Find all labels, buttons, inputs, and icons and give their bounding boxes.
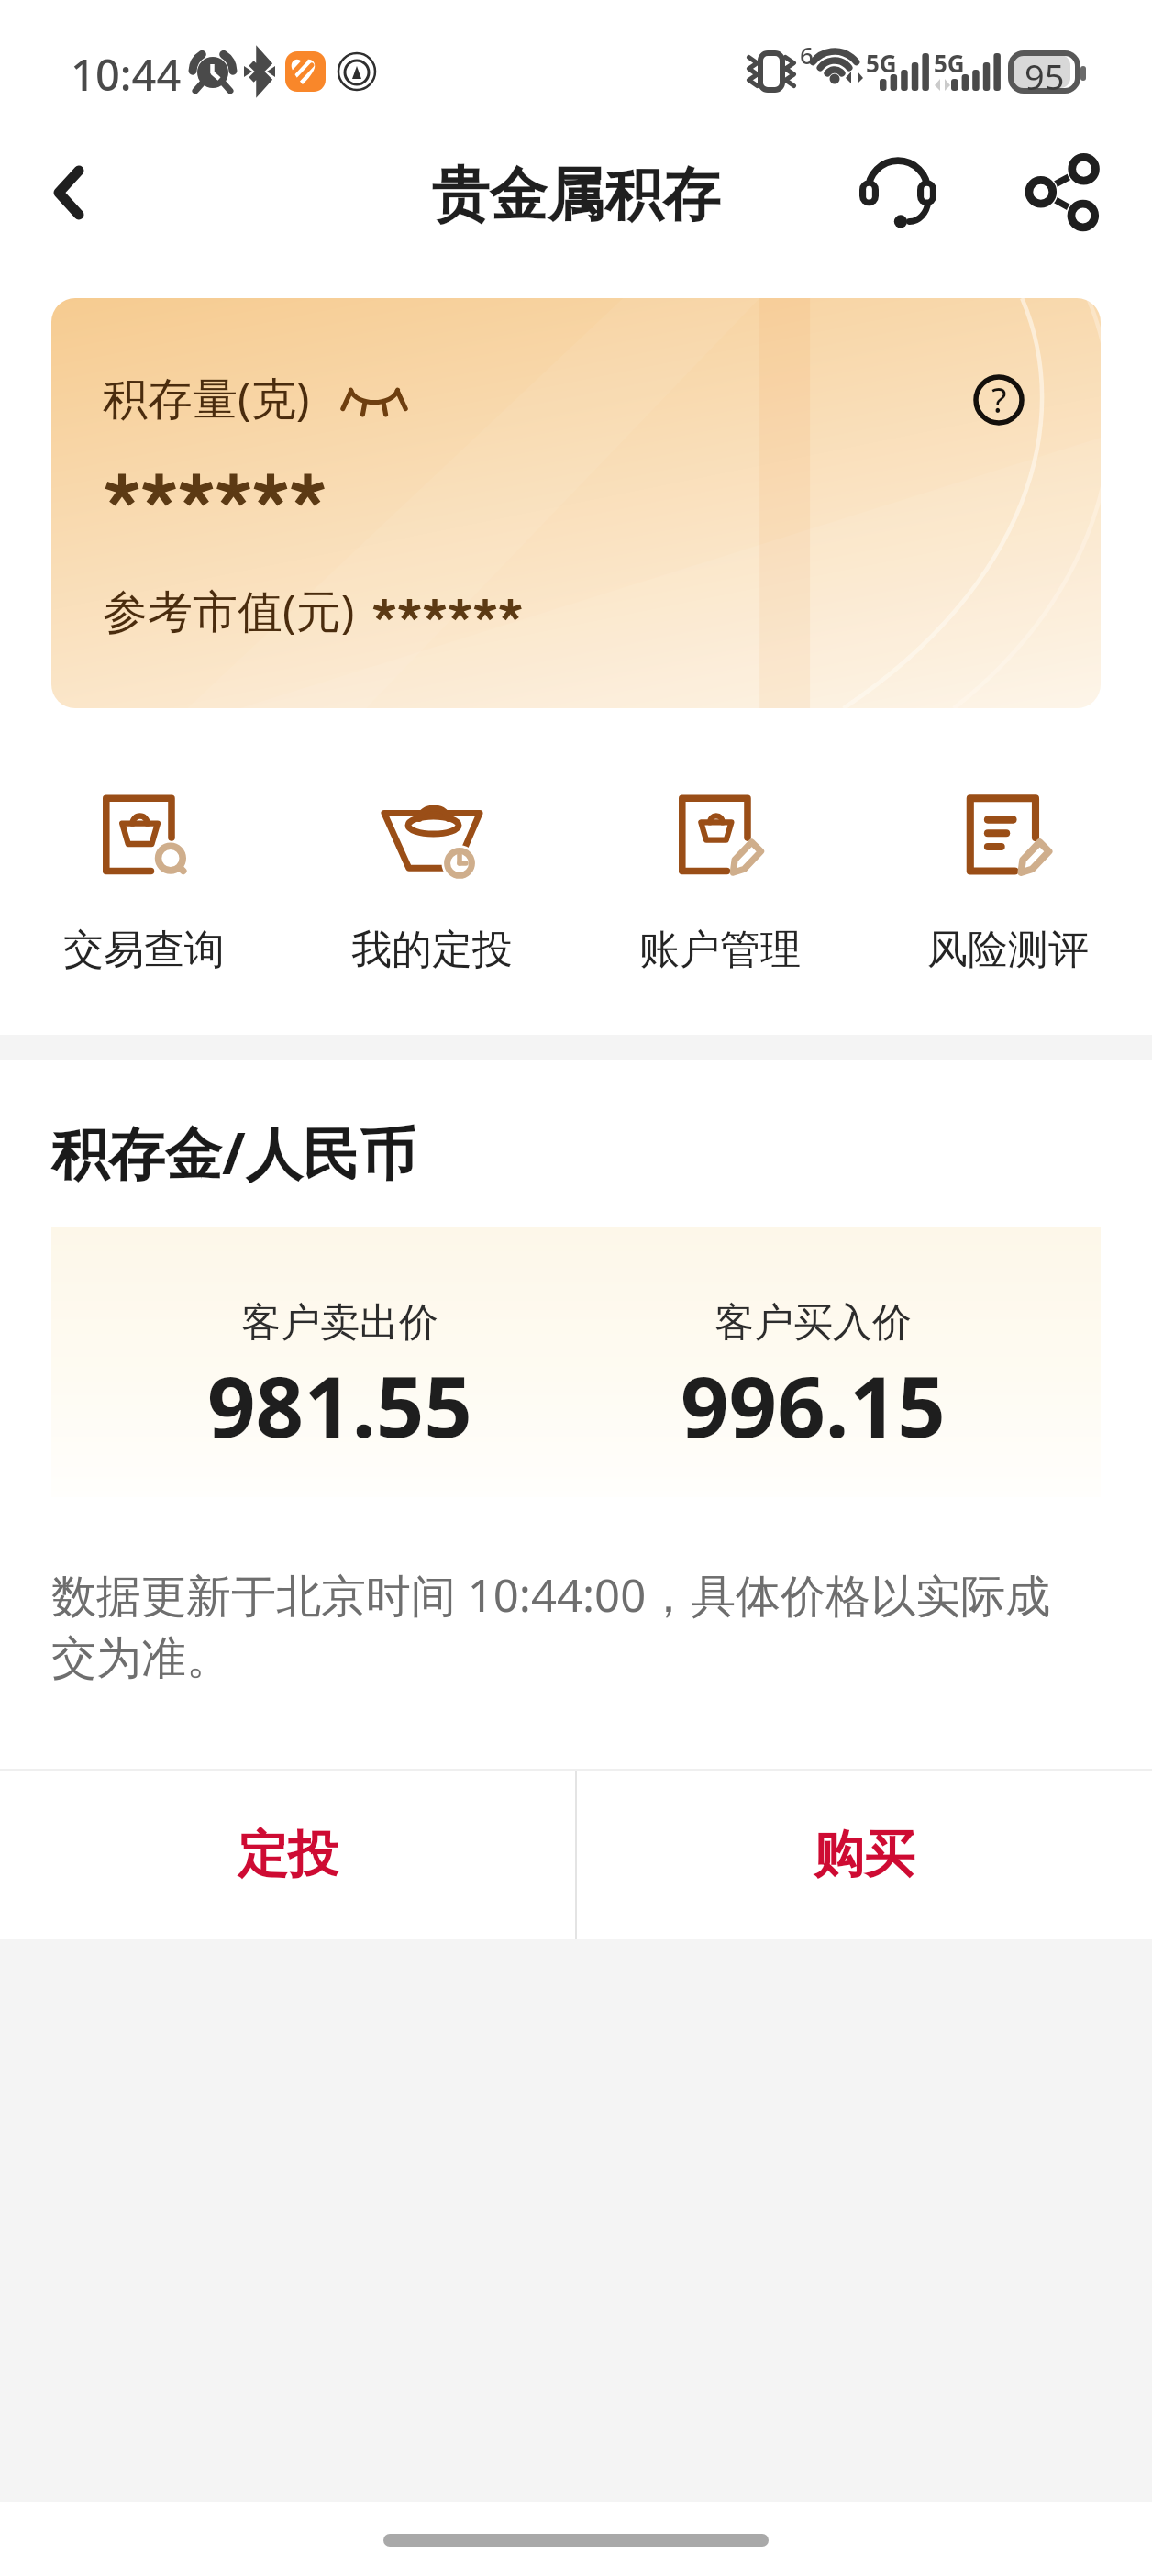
staticText: 客户买入价 <box>714 1298 912 1348</box>
staticText: 定投 <box>238 1823 338 1886</box>
staticText: 我的定投 <box>351 925 513 975</box>
staticText: 客户卖出价 <box>241 1298 438 1348</box>
staticText: 6 <box>800 39 814 71</box>
staticText: 购买 <box>814 1823 914 1886</box>
staticText: 参考市值(元) <box>103 580 355 641</box>
button[interactable]: 积存量(克) <box>51 298 1101 708</box>
staticText: 996.15 <box>681 1348 946 1462</box>
button[interactable]: Share <box>1013 142 1113 243</box>
button[interactable]: 风险测评 <box>864 794 1152 975</box>
button[interactable]: Customer service <box>847 142 948 243</box>
button[interactable]: 定投 <box>0 1769 576 1939</box>
button[interactable]: 我的定投 <box>288 794 576 975</box>
staticText: 数据更新于北京时间 10:44:00，具体价格以实际成交为准。 <box>51 1564 1088 1687</box>
button[interactable]: Back <box>20 142 117 243</box>
staticText: ? <box>991 375 1007 423</box>
staticText: 5G <box>866 47 897 79</box>
staticText: 贵金属积存 <box>0 159 1152 231</box>
button[interactable]: 购买 <box>576 1769 1152 1939</box>
staticText: 风险测评 <box>927 925 1089 975</box>
staticText: 10:44 <box>71 45 182 104</box>
staticText: 账户管理 <box>639 925 801 975</box>
staticText: 981.55 <box>207 1348 472 1462</box>
staticText: 5G <box>934 47 965 79</box>
staticText: 积存金/人民币 <box>51 1114 416 1192</box>
button[interactable]: 账户管理 <box>576 794 864 975</box>
button[interactable]: 交易查询 <box>0 794 288 975</box>
button[interactable]: Help <box>973 374 1025 426</box>
staticText: 95 <box>1025 52 1065 100</box>
staticText: 积存量(克) <box>103 367 310 428</box>
staticText: 交易查询 <box>63 925 225 975</box>
